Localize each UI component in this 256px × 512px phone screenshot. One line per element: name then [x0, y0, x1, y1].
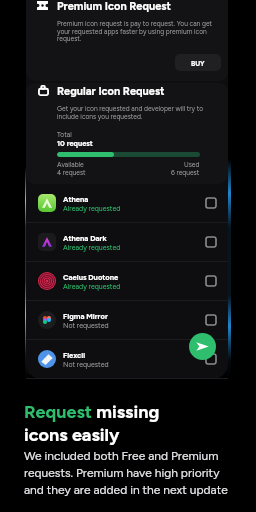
button[interactable]: Flexcil	[26, 340, 228, 378]
staticText: Total	[57, 131, 72, 139]
staticText: Not requested	[63, 360, 109, 368]
button[interactable]: Athena Dark	[26, 223, 228, 261]
button[interactable]: Athena	[26, 184, 228, 222]
button[interactable]: Figma Mirror	[26, 301, 228, 339]
staticText: Already requested	[63, 204, 121, 212]
button[interactable]: Caelus Duotone	[26, 262, 228, 300]
staticText: 4 request	[57, 169, 86, 177]
button[interactable]: Send request	[189, 333, 216, 360]
staticText: Available	[57, 161, 84, 169]
button[interactable]: BUY	[175, 54, 221, 71]
staticText: Premium Icon Request	[57, 0, 171, 13]
staticText: Athena	[63, 195, 89, 204]
staticText: Premium icon request is pay to request. …	[57, 20, 215, 42]
staticText: Get your icon requested and developer wi…	[57, 105, 207, 120]
staticText: We included both Free and Premium reques…	[24, 449, 236, 497]
staticText: Already requested	[63, 243, 121, 251]
staticText: Athena Dark	[63, 234, 107, 243]
staticText: Regular Icon Request	[57, 85, 165, 98]
staticText: Request missing icons easily	[24, 401, 204, 446]
staticText: Not requested	[63, 321, 109, 329]
staticText: Caelus Duotone	[63, 273, 119, 282]
staticText: 6 request	[171, 169, 200, 177]
staticText: Already requested	[63, 282, 121, 290]
staticText: Figma Mirror	[63, 312, 108, 321]
staticText: Flexcil	[63, 351, 86, 360]
staticText: 10 request	[57, 139, 93, 148]
staticText: BUY	[191, 59, 205, 67]
staticText: Used	[184, 161, 200, 169]
